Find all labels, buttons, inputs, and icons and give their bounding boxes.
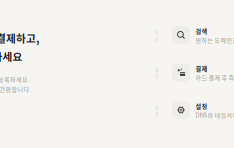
staticText: 02 — [155, 67, 158, 80]
staticText: 01 — [155, 29, 158, 42]
button[interactable]: 01 — [155, 26, 234, 44]
staticText: 카드 결제 후 즉시 사용 — [195, 73, 234, 82]
staticText: 원하는 도메인을 찾아보세요 — [195, 36, 234, 44]
staticText: 결제 — [195, 64, 207, 73]
staticText: 검색 — [195, 26, 207, 35]
staticText: 원하는 주소를 찾아 바로 등록하세요. — [0, 75, 30, 83]
staticText: 설정 — [195, 101, 207, 110]
staticText: DNS와 네임서버 연결 — [195, 111, 234, 119]
staticText: 연결부터 관리까지 한 번에 간편합니다. — [0, 85, 31, 94]
staticText: 도메인을 검색하고 결제하고, — [0, 30, 39, 45]
button[interactable]: 02 — [155, 63, 234, 81]
staticText: 03 — [155, 104, 158, 117]
button[interactable]: 03 — [155, 101, 234, 119]
staticText: 바로 연결하세요 — [0, 48, 23, 64]
